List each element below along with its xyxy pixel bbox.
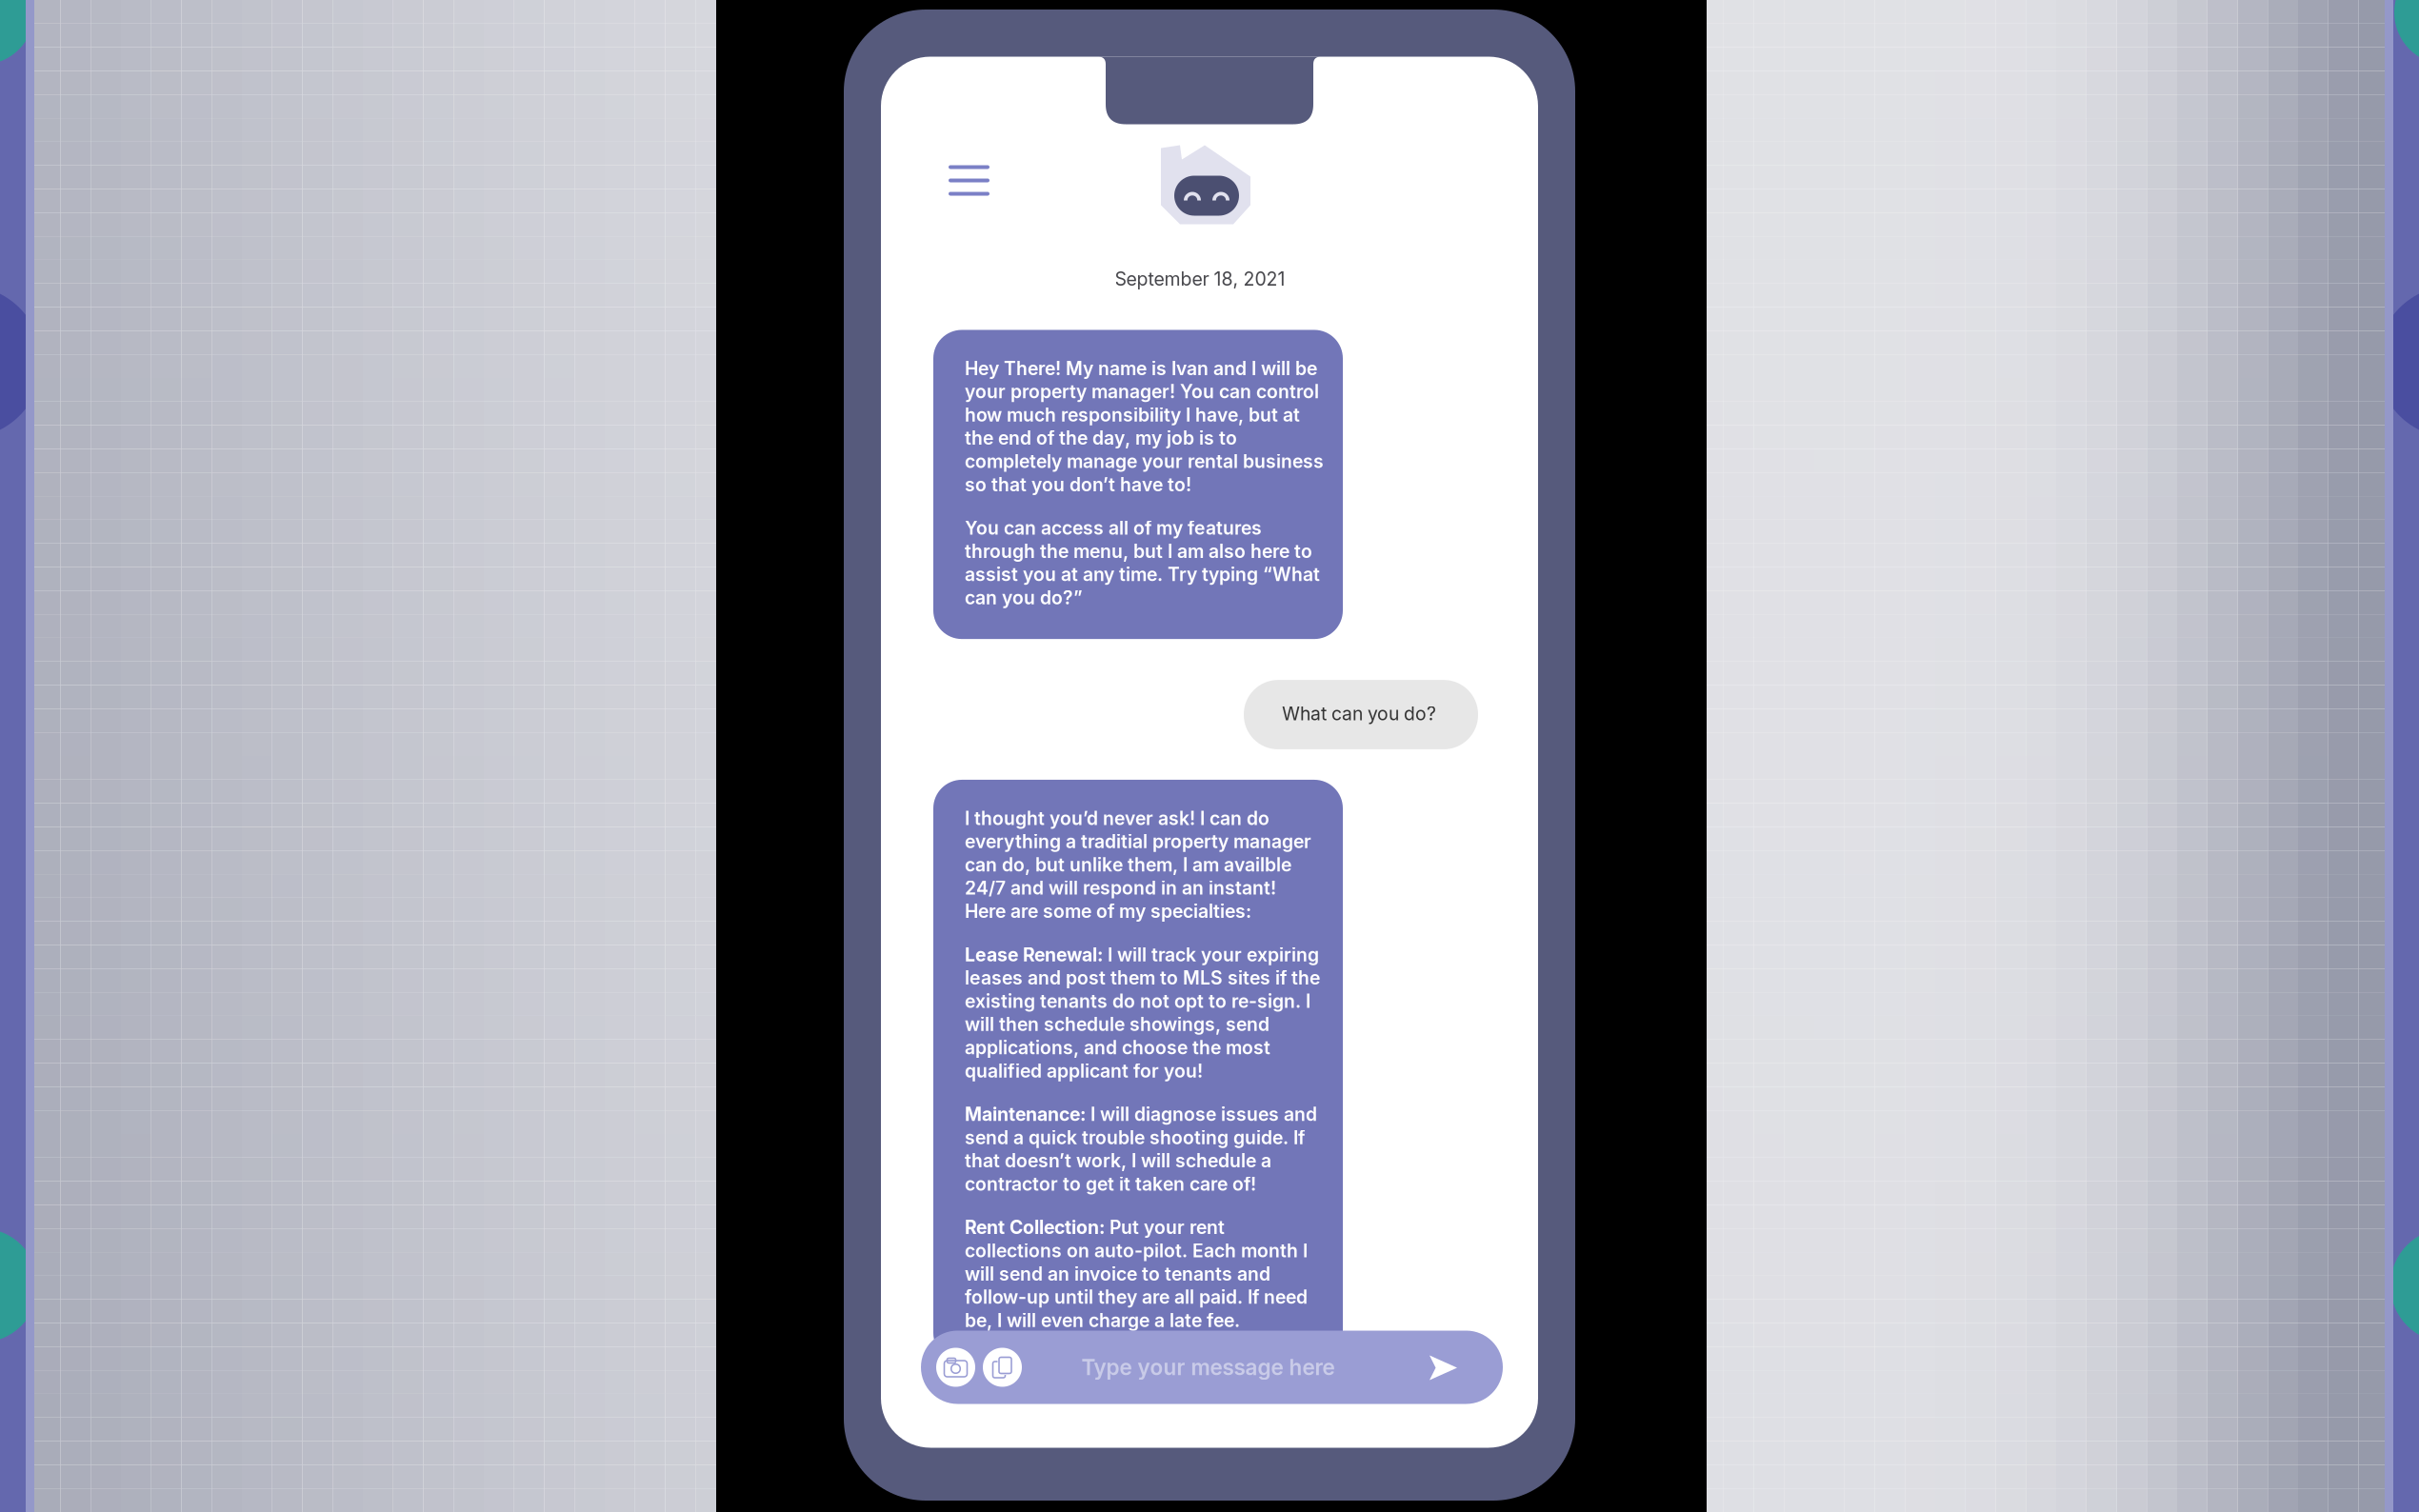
staticText: Maintenance: I will diagnose issues and …	[965, 1103, 1317, 1195]
button[interactable]: Camera	[936, 1348, 975, 1387]
button[interactable]: Send	[1429, 1355, 1457, 1380]
button[interactable]: Menu	[937, 152, 1001, 209]
staticText: You can access all of my features throug…	[965, 517, 1320, 609]
staticText: What can you do?	[1282, 703, 1436, 724]
staticText: Type your message here	[1081, 1355, 1335, 1380]
staticText: Lease Renewal: I will track your expirin…	[965, 944, 1320, 1082]
staticText: I thought you’d never ask! I can do ever…	[965, 807, 1311, 922]
staticText: September 18, 2021	[1115, 268, 1285, 290]
staticText: Rent Collection: Put your rent collectio…	[965, 1217, 1308, 1331]
staticText: Hey There! My name is Ivan and I will be…	[965, 358, 1324, 495]
button[interactable]: Attach document	[983, 1348, 1022, 1387]
